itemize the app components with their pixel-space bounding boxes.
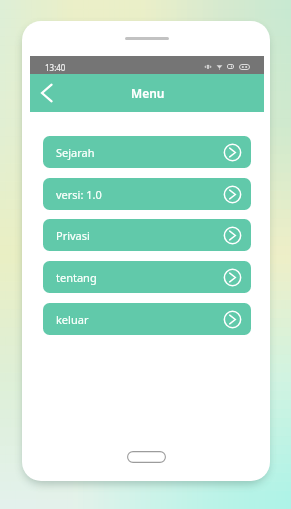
staticText: keluar xyxy=(56,312,89,327)
button[interactable]: Sejarah xyxy=(43,136,251,168)
button[interactable]: keluar xyxy=(43,303,251,335)
staticText: Menu xyxy=(131,85,165,101)
button[interactable]: Privasi xyxy=(43,219,251,251)
button[interactable]: Back xyxy=(30,76,64,110)
button[interactable]: tentang xyxy=(43,261,251,293)
staticText: 13:40 xyxy=(45,62,66,73)
button[interactable]: versi: 1.0 xyxy=(43,178,251,210)
staticText: tentang xyxy=(56,270,97,285)
staticText: Sejarah xyxy=(56,145,95,160)
staticText: versi: 1.0 xyxy=(56,187,102,202)
staticText: Privasi xyxy=(56,228,90,243)
